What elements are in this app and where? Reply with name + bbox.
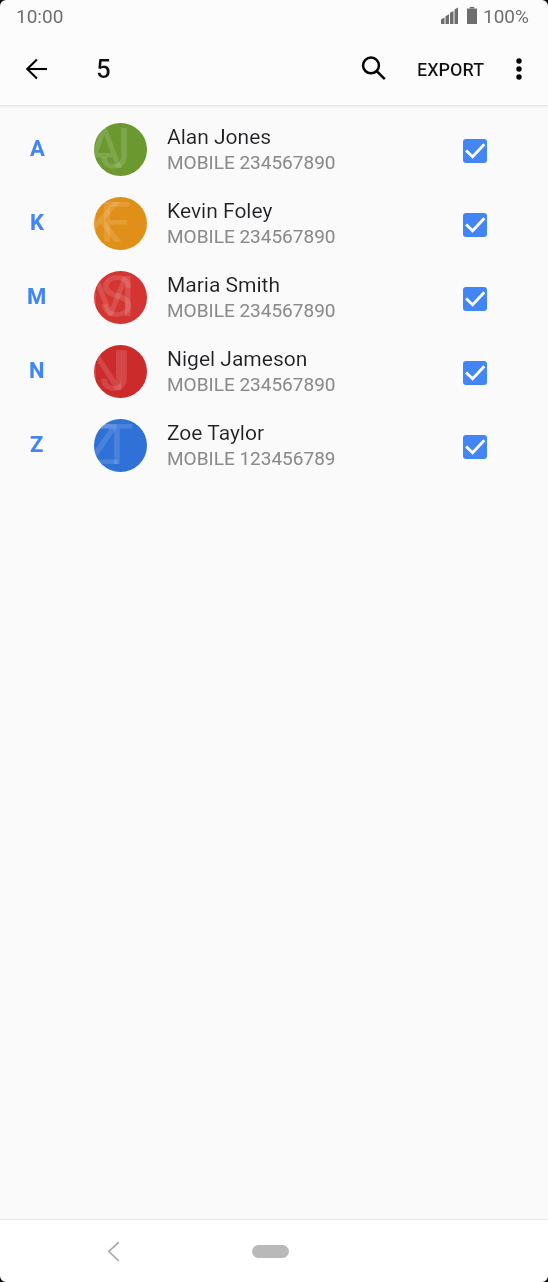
- staticText: Alan Jones: [167, 125, 272, 150]
- button[interactable]: N: [0, 334, 548, 408]
- staticText: MOBILE 123456789: [167, 447, 336, 469]
- staticText: F: [100, 197, 131, 250]
- staticText: Z: [30, 432, 44, 458]
- staticText: Kevin Foley: [167, 199, 273, 224]
- button[interactable]: Selected: [448, 408, 502, 482]
- button[interactable]: Z: [0, 408, 548, 482]
- staticText: 5: [96, 54, 111, 84]
- staticText: N: [29, 358, 45, 384]
- button[interactable]: Selected: [448, 112, 502, 186]
- staticText: MOBILE 234567890: [167, 225, 336, 247]
- staticText: 100%: [483, 5, 529, 27]
- staticText: M: [94, 271, 135, 324]
- staticText: J: [100, 123, 131, 176]
- staticText: K: [94, 197, 122, 250]
- staticText: T: [100, 419, 134, 472]
- staticText: MOBILE 234567890: [167, 373, 336, 395]
- button[interactable]: More options: [494, 44, 543, 93]
- button[interactable]: Search: [347, 42, 401, 96]
- staticText: A: [94, 123, 123, 176]
- staticText: Nigel Jameson: [167, 347, 308, 372]
- staticText: A: [30, 136, 45, 162]
- staticText: MOBILE 234567890: [167, 299, 336, 321]
- button[interactable]: K: [0, 186, 548, 260]
- staticText: MOBILE 234567890: [167, 151, 336, 173]
- staticText: Zoe Taylor: [167, 421, 265, 446]
- staticText: Z: [94, 419, 120, 472]
- button[interactable]: M: [0, 260, 548, 334]
- staticText: J: [100, 345, 131, 398]
- staticText: M: [27, 284, 47, 310]
- button[interactable]: Selected: [448, 260, 502, 334]
- staticText: S: [100, 271, 134, 324]
- staticText: 10:00: [16, 5, 64, 27]
- button[interactable]: Back: [12, 44, 61, 93]
- button[interactable]: Selected: [448, 186, 502, 260]
- staticText: K: [30, 210, 44, 236]
- button[interactable]: Home: [252, 1245, 289, 1258]
- button[interactable]: Back: [92, 1230, 134, 1272]
- button[interactable]: EXPORT: [397, 41, 505, 97]
- button[interactable]: A: [0, 112, 548, 186]
- staticText: EXPORT: [417, 59, 485, 80]
- button[interactable]: Selected: [448, 334, 502, 408]
- staticText: N: [94, 345, 126, 398]
- staticText: Maria Smith: [167, 273, 281, 298]
